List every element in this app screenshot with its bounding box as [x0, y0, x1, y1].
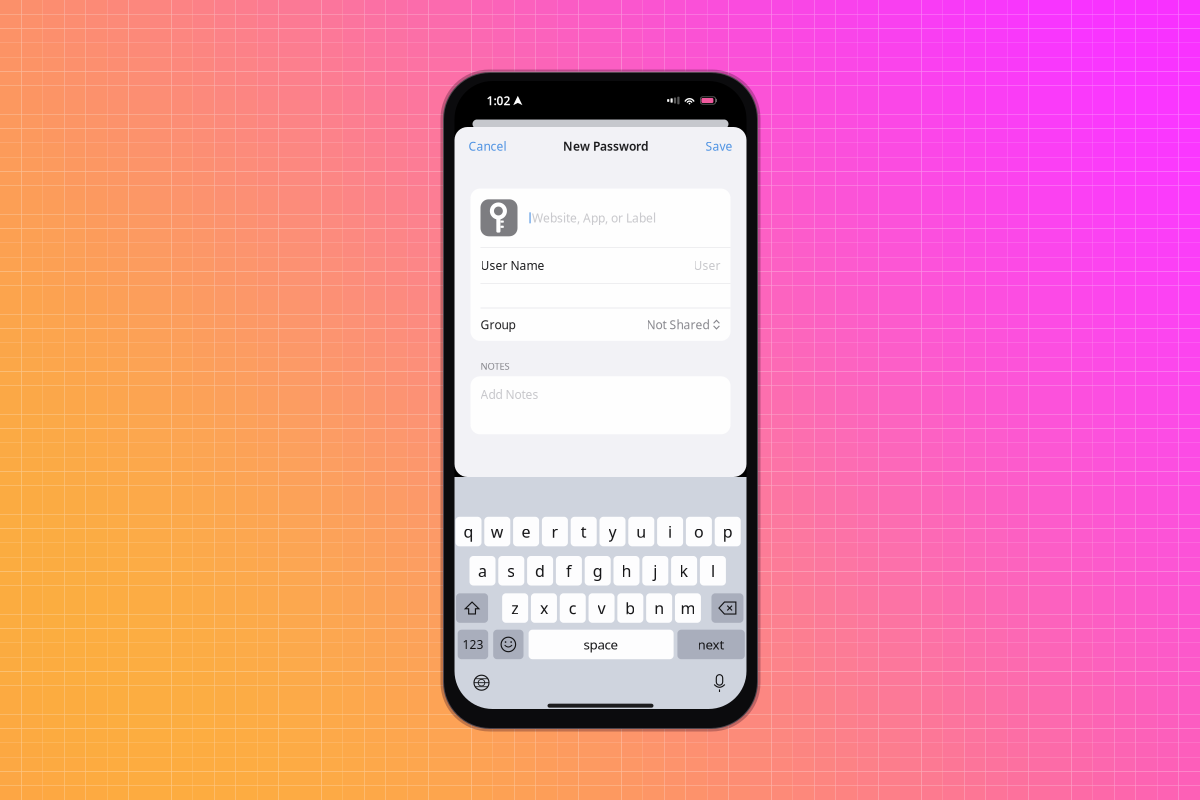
- staticText: User Name: [480, 257, 544, 273]
- staticText: t: [581, 521, 587, 542]
- staticText: p: [723, 521, 733, 542]
- staticText: e: [522, 521, 531, 542]
- button[interactable]: o: [686, 517, 712, 546]
- staticText: o: [694, 521, 704, 542]
- staticText: a: [478, 560, 487, 581]
- staticText: 1:02: [486, 92, 510, 108]
- button[interactable]: 123: [458, 630, 488, 659]
- button[interactable]: next: [677, 630, 745, 659]
- button[interactable]: z: [502, 593, 528, 623]
- staticText: Group: [480, 317, 515, 332]
- button[interactable]: v: [589, 593, 615, 623]
- button[interactable]: Group: [470, 308, 730, 341]
- button[interactable]: x: [531, 593, 557, 623]
- staticText: l: [711, 560, 715, 581]
- staticText: Website, App, or Label: [532, 210, 656, 226]
- button[interactable]: j: [642, 556, 668, 585]
- staticText: Add Notes: [480, 386, 538, 402]
- staticText: g: [593, 560, 603, 581]
- button[interactable]: w: [484, 517, 510, 546]
- button[interactable]: f: [556, 556, 582, 585]
- staticText: NOTES: [480, 360, 509, 372]
- button[interactable]: i: [657, 517, 683, 546]
- button[interactable]: Dictate: [706, 670, 732, 696]
- staticText: q: [463, 521, 473, 542]
- staticText: c: [569, 597, 577, 619]
- button[interactable]: h: [613, 556, 639, 585]
- button[interactable]: Cancel: [465, 133, 509, 159]
- staticText: d: [535, 560, 545, 581]
- staticText: j: [653, 560, 657, 581]
- staticText: b: [625, 597, 635, 619]
- staticText: Cancel: [468, 138, 506, 154]
- button[interactable]: a: [469, 556, 495, 585]
- staticText: k: [680, 560, 689, 581]
- button[interactable]: l: [700, 556, 726, 585]
- button[interactable]: r: [542, 517, 568, 546]
- button[interactable]: s: [498, 556, 524, 585]
- staticText: f: [566, 560, 572, 581]
- staticText: next: [698, 636, 725, 653]
- button[interactable]: q: [455, 517, 481, 546]
- staticText: User: [693, 257, 720, 273]
- button[interactable]: g: [585, 556, 611, 585]
- staticText: u: [636, 521, 646, 542]
- button[interactable]: t: [571, 517, 597, 546]
- staticText: 123: [462, 636, 483, 652]
- button[interactable]: c: [560, 593, 586, 623]
- button[interactable]: Save: [702, 133, 735, 159]
- button[interactable]: space: [529, 630, 674, 659]
- button[interactable]: k: [671, 556, 697, 585]
- staticText: m: [680, 597, 695, 619]
- button[interactable]: Shift: [456, 593, 488, 623]
- staticText: h: [621, 560, 631, 581]
- button[interactable]: Emoji keyboard: [493, 630, 523, 659]
- staticText: y: [608, 521, 616, 542]
- staticText: i: [668, 521, 672, 542]
- button[interactable]: Delete: [711, 593, 743, 623]
- button[interactable]: e: [513, 517, 539, 546]
- staticText: v: [598, 597, 606, 619]
- button[interactable]: n: [646, 593, 672, 623]
- staticText: z: [511, 597, 519, 619]
- staticText: space: [584, 636, 619, 653]
- button[interactable]: y: [599, 517, 625, 546]
- staticText: Save: [705, 138, 732, 154]
- staticText: s: [507, 560, 515, 581]
- staticText: n: [654, 597, 664, 619]
- button[interactable]: m: [675, 593, 701, 623]
- staticText: r: [551, 521, 558, 542]
- staticText: New Password: [563, 138, 649, 154]
- staticText: Not Shared: [646, 317, 709, 332]
- staticText: x: [540, 597, 548, 619]
- button[interactable]: d: [527, 556, 553, 585]
- staticText: w: [491, 521, 504, 542]
- button[interactable]: u: [628, 517, 654, 546]
- button[interactable]: b: [617, 593, 643, 623]
- button[interactable]: Switch keyboard: [468, 670, 494, 696]
- button[interactable]: p: [715, 517, 741, 546]
